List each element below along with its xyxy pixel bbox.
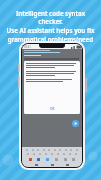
staticText: 09:41 xyxy=(24,45,31,49)
button[interactable]: OK xyxy=(47,106,58,112)
button[interactable]: Run xyxy=(72,120,79,127)
button[interactable]: Key xyxy=(37,158,40,161)
button[interactable]: Key xyxy=(29,158,32,161)
button[interactable]: Key xyxy=(55,158,58,161)
staticText: Intelligent code syntax checker. Use AI … xyxy=(4,9,97,53)
button[interactable]: Key xyxy=(46,158,49,161)
button[interactable]: Key xyxy=(72,158,75,161)
staticText: OK xyxy=(50,107,55,111)
button[interactable]: Key xyxy=(64,158,67,161)
